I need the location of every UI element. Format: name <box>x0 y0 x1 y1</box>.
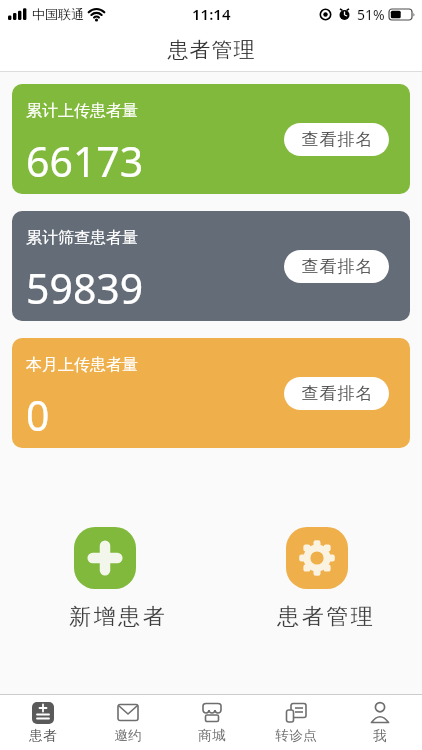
staticText: 患者管理 <box>167 37 255 63</box>
staticText: 患者 <box>29 727 57 744</box>
staticText: 患者管理 <box>276 603 374 631</box>
button[interactable]: 本月上传患者量 <box>12 338 410 448</box>
button[interactable]: 患者 <box>0 695 85 750</box>
staticText: 累计上传患者量 <box>26 101 138 121</box>
button[interactable]: 累计上传患者量 <box>12 84 410 194</box>
button[interactable]: 邀约 <box>85 695 170 750</box>
button[interactable]: 商城 <box>170 695 254 750</box>
staticText: 11:14 <box>192 4 231 24</box>
button[interactable]: 患者管理 <box>265 600 385 634</box>
staticText: 我 <box>373 727 387 744</box>
button[interactable] <box>74 527 136 589</box>
button[interactable]: 我 <box>338 695 422 750</box>
staticText: 转诊点 <box>275 727 317 744</box>
staticText: 中国联通 <box>32 6 84 22</box>
button[interactable]: 累计筛查患者量 <box>12 211 410 321</box>
button[interactable]: 转诊点 <box>254 695 338 750</box>
staticText: 查看排名 <box>301 256 373 277</box>
staticText: 查看排名 <box>301 383 373 404</box>
staticText: 0 <box>26 387 50 443</box>
button[interactable]: 查看排名 <box>284 250 389 283</box>
staticText: 本月上传患者量 <box>26 355 138 375</box>
staticText: 59839 <box>26 260 144 316</box>
staticText: 51% <box>357 5 385 24</box>
staticText: 邀约 <box>114 727 142 744</box>
button[interactable] <box>286 527 348 589</box>
staticText: 查看排名 <box>301 129 373 150</box>
staticText: 新增患者 <box>68 603 166 631</box>
button[interactable]: 查看排名 <box>284 377 389 410</box>
staticText: 66173 <box>26 133 144 189</box>
staticText: 累计筛查患者量 <box>26 228 138 248</box>
button[interactable]: 新增患者 <box>57 600 177 634</box>
button[interactable]: 查看排名 <box>284 123 389 156</box>
staticText: 商城 <box>198 727 226 744</box>
